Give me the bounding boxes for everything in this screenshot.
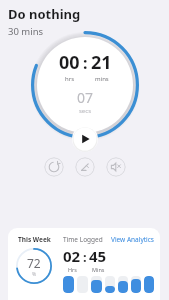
staticText: hrs <box>65 75 75 83</box>
staticText: Mins <box>92 266 105 273</box>
button[interactable]: Mute <box>106 157 126 177</box>
staticText: This Week <box>18 235 51 244</box>
staticText: 21 <box>91 50 112 75</box>
button[interactable] <box>105 276 115 293</box>
staticText: secs <box>79 107 92 115</box>
staticText: : <box>83 52 88 74</box>
staticText: View Analytics <box>111 235 154 244</box>
staticText: Do nothing <box>8 5 81 23</box>
button[interactable]: This Week <box>8 228 160 300</box>
button[interactable]: Edit <box>75 157 95 177</box>
button[interactable] <box>118 276 128 293</box>
staticText: % <box>32 271 37 278</box>
staticText: Hrs <box>68 266 77 273</box>
staticText: Time Logged <box>63 235 103 244</box>
staticText: mins <box>95 75 109 83</box>
staticText: 72 <box>27 255 41 271</box>
button[interactable] <box>131 276 141 293</box>
staticText: : <box>83 248 87 266</box>
button[interactable]: View Analytics <box>111 235 154 244</box>
button[interactable] <box>144 276 154 293</box>
button[interactable]: Restart <box>44 157 64 177</box>
button[interactable] <box>91 276 102 293</box>
button[interactable] <box>77 276 88 293</box>
staticText: 45 <box>89 246 107 266</box>
staticText: 30 mins <box>8 25 44 38</box>
staticText: 07 <box>77 88 94 107</box>
button[interactable] <box>63 276 74 293</box>
staticText: 02 <box>63 246 81 266</box>
staticText: 00 <box>59 50 80 75</box>
button[interactable]: Start timer <box>72 126 98 152</box>
